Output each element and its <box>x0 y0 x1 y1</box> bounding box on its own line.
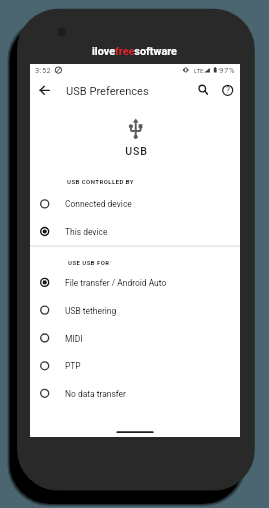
staticText: Connected device <box>65 199 132 209</box>
staticText: This device <box>65 227 108 237</box>
staticText: USB <box>125 145 148 157</box>
button[interactable] <box>30 190 240 218</box>
button[interactable] <box>30 296 240 324</box>
button[interactable] <box>30 218 240 246</box>
staticText: MIDI <box>65 334 83 344</box>
staticText: 3:52 <box>35 66 52 75</box>
staticText: No data transfer <box>65 389 126 399</box>
button[interactable] <box>30 269 240 297</box>
staticText: USB tethering <box>65 306 117 316</box>
staticText: PTP <box>65 361 81 371</box>
staticText: File transfer / Android Auto <box>65 278 167 288</box>
staticText: USE USB FOR <box>68 259 110 266</box>
staticText: LTE <box>194 67 204 74</box>
staticText: USB Preferences <box>66 85 149 98</box>
staticText: ? <box>226 85 230 95</box>
staticText: 97% <box>219 66 236 75</box>
staticText: USB CONTROLLED BY <box>67 178 134 185</box>
button[interactable]: Help <box>217 77 239 104</box>
staticText: ilovefreesoftware <box>92 45 177 58</box>
button[interactable] <box>30 380 240 408</box>
button[interactable] <box>30 352 240 380</box>
button[interactable]: Search <box>193 77 214 104</box>
button[interactable] <box>30 324 240 352</box>
button[interactable]: Back <box>31 77 59 104</box>
